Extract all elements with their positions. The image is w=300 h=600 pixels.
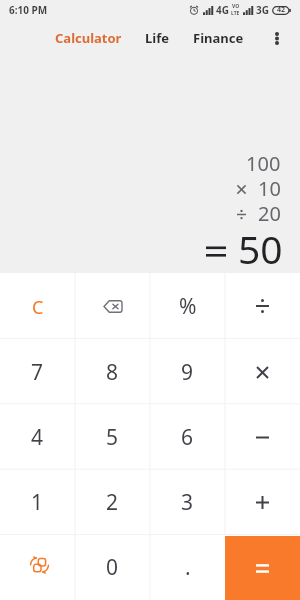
staticText: 100: [246, 150, 281, 175]
staticText: %: [179, 292, 197, 321]
button[interactable]: 3: [150, 470, 225, 535]
staticText: 10: [258, 175, 281, 200]
staticText: LTE: [231, 10, 240, 17]
button[interactable]: 5: [75, 405, 150, 470]
staticText: Life: [145, 29, 169, 47]
button[interactable]: 8: [75, 339, 150, 405]
staticText: 42: [277, 5, 286, 15]
staticText: 20: [258, 200, 281, 225]
button[interactable]: Minus: [225, 405, 300, 470]
staticText: 6:10 PM: [9, 3, 48, 17]
button[interactable]: Plus: [225, 470, 300, 535]
button[interactable]: Finance: [187, 22, 250, 54]
button[interactable]: Backspace: [75, 273, 150, 339]
staticText: 9: [181, 358, 194, 387]
staticText: Finance: [193, 29, 244, 47]
button[interactable]: Unit converter: [0, 535, 75, 600]
staticText: 50: [238, 222, 283, 275]
staticText: 1: [31, 488, 44, 517]
staticText: VO: [232, 3, 240, 10]
staticText: 3G: [256, 3, 269, 17]
staticText: 8: [106, 358, 119, 387]
staticText: 2: [106, 488, 119, 517]
staticText: 6: [181, 423, 194, 452]
button[interactable]: Calculator: [49, 22, 128, 54]
button[interactable]: %: [150, 273, 225, 339]
button[interactable]: 1: [0, 470, 75, 535]
button[interactable]: Life: [139, 22, 175, 54]
staticText: Calculator: [55, 29, 122, 47]
button[interactable]: 4: [0, 405, 75, 470]
button[interactable]: 7: [0, 339, 75, 405]
staticText: 5: [106, 423, 119, 452]
staticText: C: [32, 295, 44, 320]
button[interactable]: 9: [150, 339, 225, 405]
button[interactable]: 2: [75, 470, 150, 535]
button[interactable]: 0: [75, 535, 150, 600]
button[interactable]: Clear: [0, 273, 75, 339]
staticText: 0: [106, 553, 119, 582]
button[interactable]: 6: [150, 405, 225, 470]
button[interactable]: Divide: [225, 273, 300, 339]
staticText: 7: [31, 358, 44, 387]
button[interactable]: More options: [253, 20, 300, 56]
staticText: 4G: [216, 3, 229, 17]
staticText: .: [185, 553, 191, 582]
button[interactable]: Multiply: [225, 339, 300, 405]
button[interactable]: Equals: [225, 536, 300, 600]
staticText: 4: [31, 423, 44, 452]
button[interactable]: .: [150, 535, 225, 600]
staticText: 3: [181, 488, 194, 517]
